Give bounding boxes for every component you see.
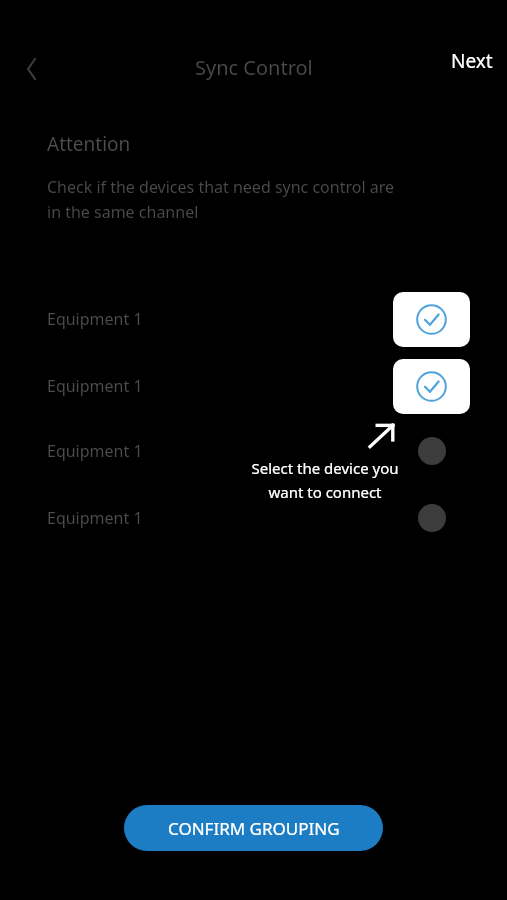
button[interactable]: Unselected device <box>418 504 446 532</box>
button[interactable]: Selected device <box>393 359 470 414</box>
button[interactable]: Selected device <box>393 292 470 347</box>
button[interactable]: Equipment 1 <box>47 308 143 330</box>
button[interactable]: Next <box>451 48 493 74</box>
staticText: CONFIRM GROUPING <box>168 817 340 840</box>
staticText: Select the device you want to connect <box>251 458 399 502</box>
button[interactable]: CONFIRM GROUPING <box>124 805 383 851</box>
staticText: Equipment 1 <box>47 507 143 529</box>
button[interactable]: Equipment 1 <box>47 507 143 529</box>
button[interactable]: Equipment 1 <box>47 440 143 462</box>
staticText: Equipment 1 <box>47 375 143 397</box>
staticText: Equipment 1 <box>47 308 143 330</box>
other: Pointer arrow <box>367 422 397 450</box>
button[interactable]: Equipment 1 <box>47 375 143 397</box>
staticText: Check if the devices that need sync cont… <box>47 176 395 222</box>
staticText: Attention <box>47 131 131 157</box>
staticText: Sync Control <box>195 54 313 81</box>
staticText: Equipment 1 <box>47 440 143 462</box>
button[interactable]: Back <box>10 47 54 91</box>
button[interactable]: Unselected device <box>418 437 446 465</box>
staticText: Next <box>451 48 493 74</box>
